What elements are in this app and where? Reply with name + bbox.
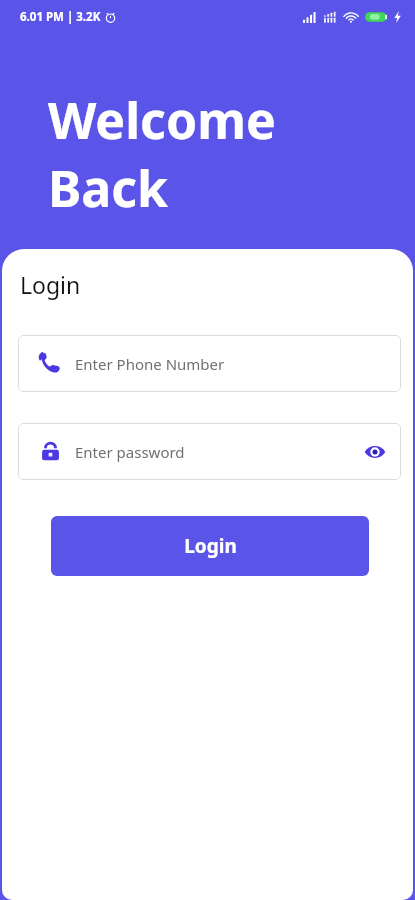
staticText: Login <box>184 533 237 559</box>
staticText: Enter password <box>75 442 355 462</box>
button[interactable]: Show password <box>355 432 395 472</box>
staticText: Login <box>20 269 81 300</box>
button[interactable]: Login <box>51 516 369 576</box>
button[interactable]: Enter password <box>18 423 401 480</box>
staticText: Welcome <box>48 86 276 154</box>
button[interactable]: Enter Phone Number <box>18 335 401 392</box>
staticText: Back <box>48 154 168 222</box>
staticText: Enter Phone Number <box>75 354 401 374</box>
staticText: 6.01 PM | 3.2K <box>20 9 101 25</box>
